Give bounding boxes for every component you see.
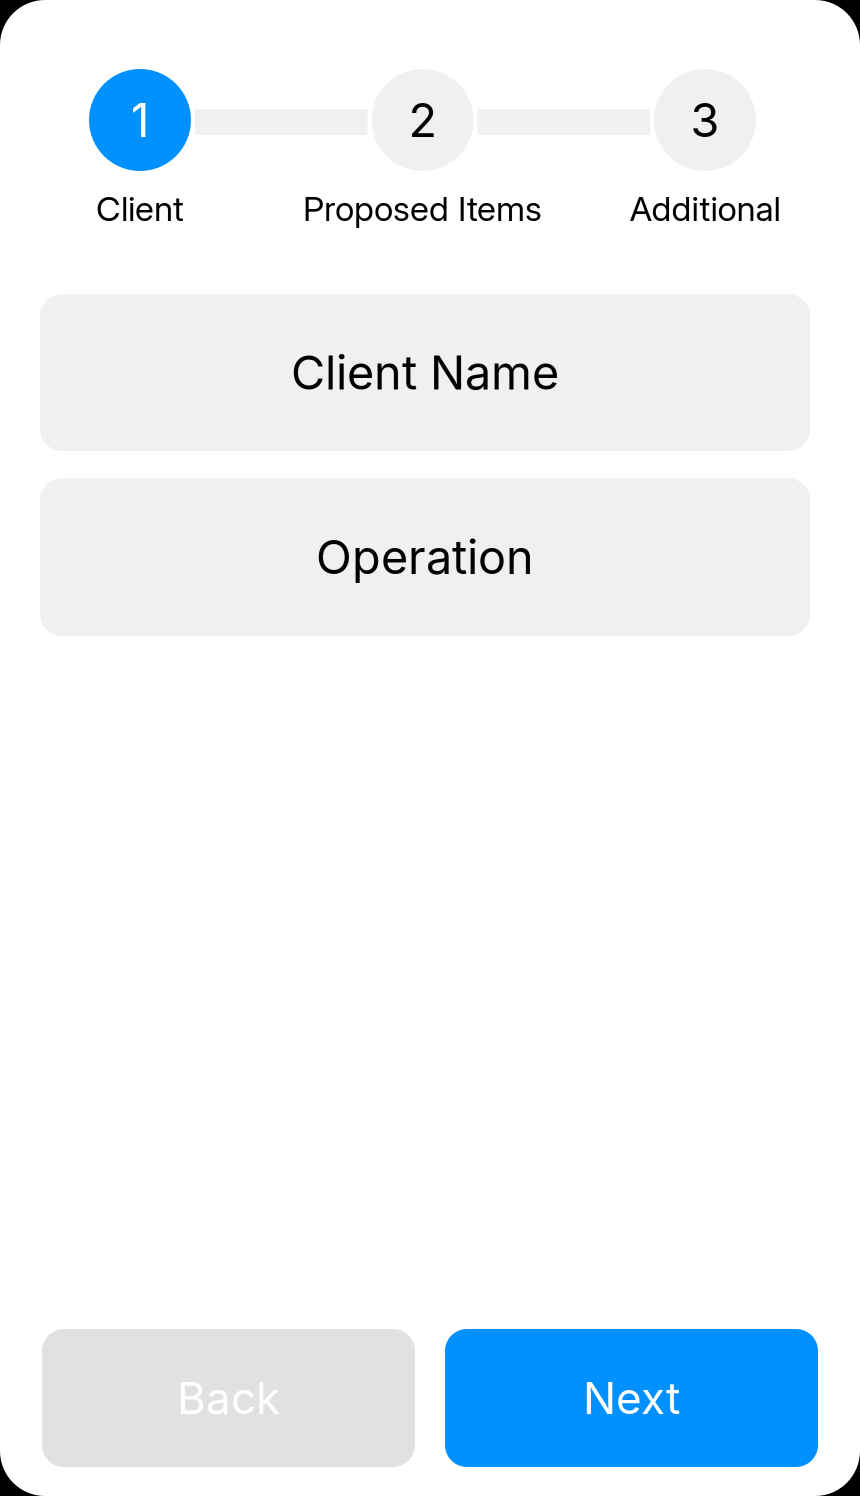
button[interactable]: Back — [42, 1329, 415, 1467]
staticText: Additional — [629, 188, 780, 229]
staticText: Next — [583, 1371, 680, 1425]
staticText: 3 — [690, 92, 719, 148]
button[interactable]: Next — [445, 1329, 818, 1467]
staticText: Client Name — [291, 344, 559, 401]
staticText: Client — [96, 188, 184, 229]
button[interactable]: Operation — [40, 478, 810, 636]
staticText: 1 — [130, 92, 149, 148]
staticText: Proposed Items — [303, 188, 542, 229]
staticText: Back — [177, 1371, 280, 1425]
staticText: 2 — [408, 92, 436, 148]
staticText: Operation — [316, 529, 534, 585]
button[interactable]: Client Name — [40, 294, 810, 451]
